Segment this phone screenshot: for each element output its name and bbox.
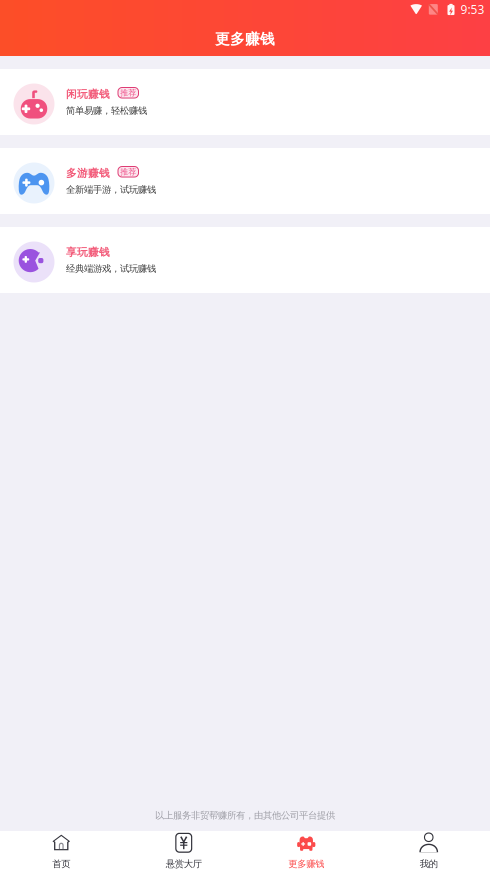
button[interactable]: 闲玩赚钱	[0, 69, 490, 135]
staticText: 推荐	[120, 167, 136, 177]
staticText: 更多赚钱	[215, 30, 275, 48]
staticText: 推荐	[120, 88, 136, 98]
button[interactable]: 更多赚钱	[245, 831, 367, 872]
staticText: 多游赚钱	[66, 167, 110, 180]
staticText: 以上服务非贸帮赚所有，由其他公司平台提供	[155, 809, 335, 821]
staticText: 9:53	[460, 1, 484, 17]
staticText: 经典端游戏，试玩赚钱	[66, 263, 156, 274]
staticText: 简单易赚，轻松赚钱	[66, 105, 147, 116]
staticText: 首页	[52, 858, 70, 870]
staticText: 闲玩赚钱	[66, 88, 110, 101]
staticText: 享玩赚钱	[66, 246, 110, 259]
button[interactable]: 首页	[0, 831, 122, 872]
staticText: 全新端手游，试玩赚钱	[66, 184, 156, 195]
staticText: 更多赚钱	[288, 858, 324, 870]
button[interactable]: 我的	[367, 831, 490, 872]
button[interactable]: 悬赏大厅	[122, 831, 245, 872]
staticText: 我的	[420, 858, 438, 870]
button[interactable]: 享玩赚钱	[0, 227, 490, 293]
button[interactable]: 多游赚钱	[0, 148, 490, 214]
staticText: 悬赏大厅	[166, 858, 202, 870]
